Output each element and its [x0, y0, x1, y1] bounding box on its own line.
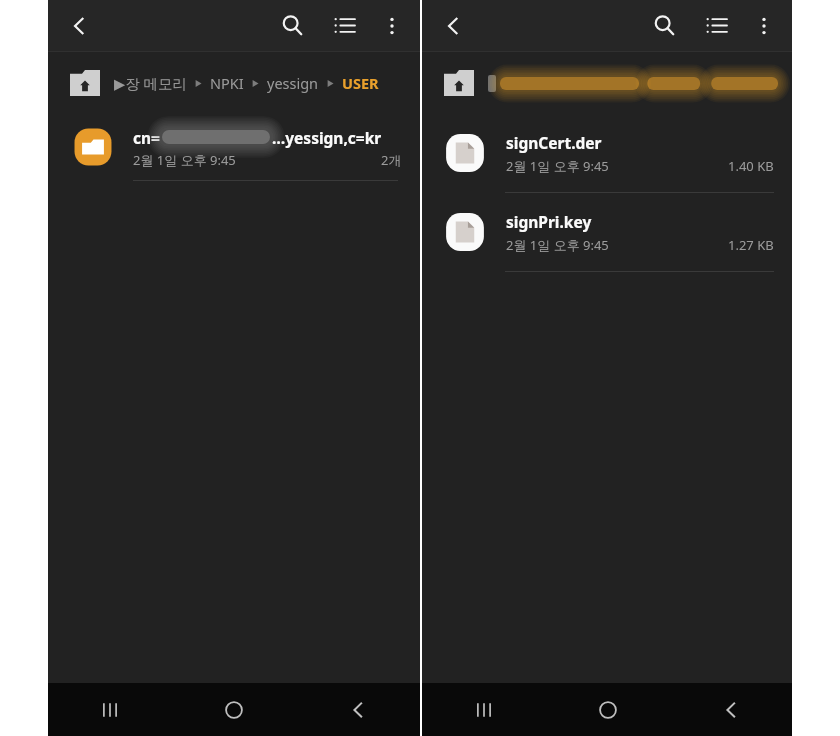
staticText: NPKI [210, 73, 244, 93]
button[interactable]: Recent apps [48, 683, 172, 736]
button[interactable]: Search [266, 0, 318, 51]
button[interactable]: Back [296, 683, 420, 736]
staticText: ▶장 메모리 [114, 73, 187, 93]
staticText: cn= [133, 127, 160, 148]
staticText: signCert.der [506, 132, 602, 153]
button[interactable] [422, 52, 792, 114]
button[interactable]: cn= [48, 114, 420, 181]
button[interactable]: Back [48, 0, 110, 51]
staticText: 2개 [381, 151, 402, 169]
button[interactable]: signCert.der [422, 114, 792, 193]
button[interactable]: More options [370, 0, 414, 51]
staticText: 1.27 KB [728, 236, 774, 254]
staticText: 1.40 KB [728, 157, 774, 175]
button[interactable]: View as list [690, 0, 742, 51]
button[interactable]: Back [422, 0, 484, 51]
button[interactable]: More options [742, 0, 786, 51]
button[interactable]: Home [546, 683, 669, 736]
button[interactable]: Recent apps [422, 683, 546, 736]
staticText: 2월 1일 오후 9:45 [506, 157, 609, 175]
staticText: 2월 1일 오후 9:45 [506, 236, 609, 254]
button[interactable]: Back [669, 683, 792, 736]
button[interactable]: ▶장 메모리 [48, 52, 420, 114]
staticText: USER [342, 73, 379, 93]
button[interactable]: Home [172, 683, 296, 736]
staticText: …yessign,c=kr [272, 127, 382, 148]
staticText: signPri.key [506, 211, 592, 232]
staticText: 2월 1일 오후 9:45 [133, 151, 236, 169]
button[interactable]: View as list [318, 0, 370, 51]
button[interactable]: signPri.key [422, 193, 792, 272]
staticText: yessign [267, 73, 319, 93]
button[interactable]: Search [638, 0, 690, 51]
